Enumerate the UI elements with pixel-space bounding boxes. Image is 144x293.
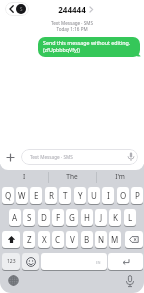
- staticText: 123: [7, 258, 16, 265]
- button[interactable]: Z: [23, 231, 35, 248]
- button[interactable]: H: [81, 209, 93, 226]
- staticText: X: [42, 234, 47, 245]
- button[interactable]: T: [59, 187, 71, 204]
- staticText: The: [48, 172, 96, 182]
- staticText: K: [113, 212, 118, 223]
- button[interactable]: U: [88, 187, 100, 204]
- staticText: P: [135, 190, 140, 201]
- button[interactable]: E: [30, 187, 42, 204]
- staticText: G: [69, 212, 75, 223]
- staticText: Send this message without editing.: [43, 39, 140, 47]
- button[interactable]: [108, 253, 143, 270]
- staticText: O: [120, 190, 127, 201]
- button[interactable]: [6, 153, 15, 162]
- button[interactable]: Y: [74, 187, 86, 204]
- button[interactable]: [22, 253, 39, 270]
- button[interactable]: Q: [2, 187, 14, 204]
- button[interactable]: [125, 275, 135, 288]
- staticText: Y: [78, 190, 83, 201]
- button[interactable]: [41, 253, 107, 270]
- staticText: EN: [92, 260, 104, 266]
- staticText: T: [63, 190, 68, 201]
- staticText: (zfUpbbbqVfyJ): [43, 46, 140, 54]
- staticText: D: [41, 212, 47, 223]
- button[interactable]: [38, 37, 140, 57]
- button[interactable]: N: [95, 231, 107, 248]
- button[interactable]: D: [38, 209, 50, 226]
- button[interactable]: M: [109, 231, 121, 248]
- staticText: U: [91, 190, 97, 201]
- staticText: Text Message · SMS: [32, 20, 112, 27]
- staticText: W: [18, 190, 26, 201]
- button[interactable]: K: [109, 209, 121, 226]
- staticText: Text Message · SMS: [30, 154, 100, 162]
- staticText: I'm: [96, 172, 144, 182]
- button[interactable]: G: [66, 209, 78, 226]
- button[interactable]: W: [16, 187, 28, 204]
- staticText: J: [100, 212, 103, 223]
- staticText: A: [12, 212, 18, 223]
- button[interactable]: I: [102, 187, 114, 204]
- button[interactable]: F: [52, 209, 64, 226]
- button[interactable]: [21, 149, 138, 165]
- staticText: R: [49, 190, 54, 201]
- button[interactable]: 123: [2, 253, 20, 270]
- button[interactable]: S: [16, 4, 26, 14]
- staticText: E: [34, 190, 39, 201]
- button[interactable]: V: [66, 231, 78, 248]
- staticText: S: [27, 212, 32, 223]
- button[interactable]: J: [95, 209, 107, 226]
- staticText: I: [0, 172, 48, 182]
- staticText: I: [107, 190, 110, 201]
- button[interactable]: O: [117, 187, 129, 204]
- button[interactable]: S: [23, 209, 35, 226]
- staticText: B: [84, 234, 90, 245]
- button[interactable]: B: [81, 231, 93, 248]
- button[interactable]: P: [131, 187, 143, 204]
- staticText: Z: [27, 234, 32, 245]
- button[interactable]: C: [52, 231, 64, 248]
- staticText: Q: [5, 190, 12, 201]
- staticText: 244444: [42, 4, 102, 17]
- staticText: N: [98, 234, 105, 245]
- button[interactable]: A: [9, 209, 21, 226]
- button[interactable]: [125, 231, 143, 248]
- button[interactable]: L: [124, 209, 136, 226]
- staticText: S: [20, 6, 23, 12]
- button[interactable]: R: [45, 187, 57, 204]
- button[interactable]: X: [38, 231, 50, 248]
- staticText: C: [55, 234, 61, 245]
- staticText: H: [84, 212, 90, 223]
- button[interactable]: [8, 275, 19, 286]
- staticText: Today 1:16 PM: [32, 26, 112, 33]
- button[interactable]: [5, 2, 29, 16]
- staticText: L: [128, 212, 133, 223]
- staticText: V: [70, 234, 75, 245]
- button[interactable]: [2, 231, 20, 248]
- staticText: M: [111, 234, 119, 245]
- staticText: F: [56, 212, 61, 223]
